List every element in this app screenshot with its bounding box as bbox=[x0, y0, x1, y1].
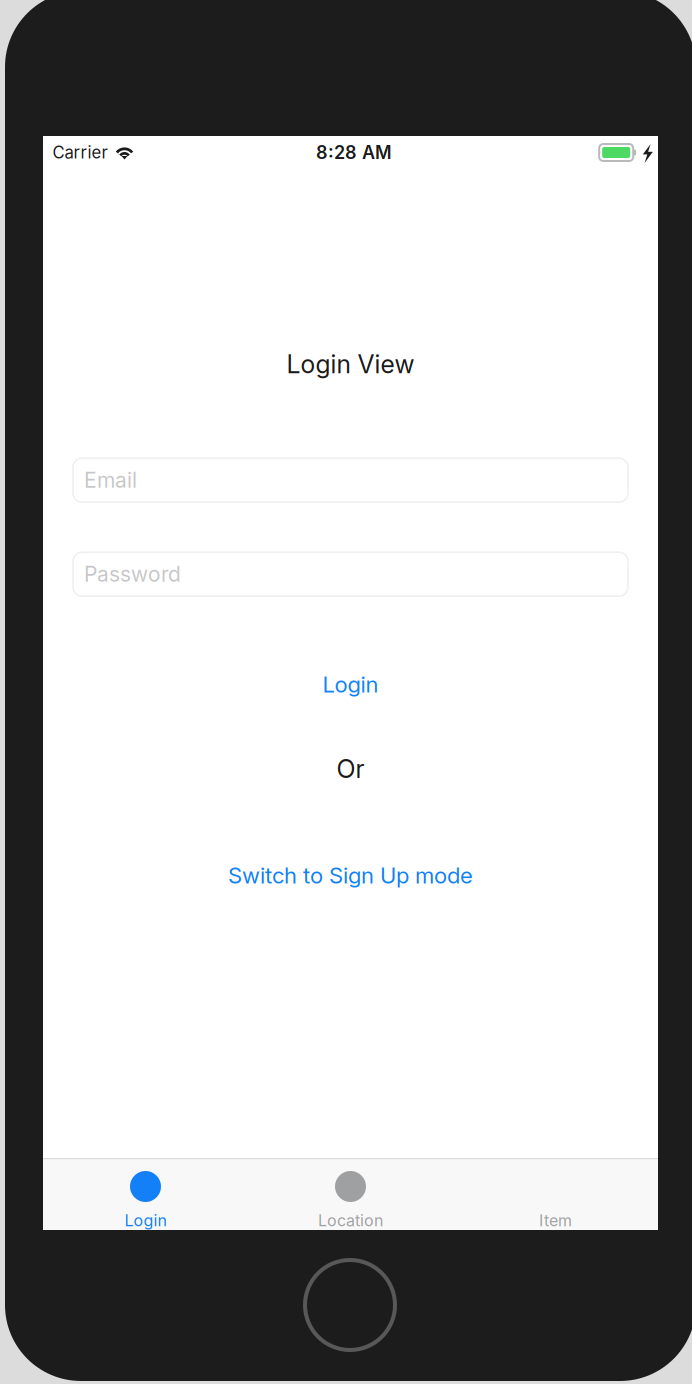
staticText: Switch to Sign Up mode bbox=[228, 862, 473, 889]
staticText: Item bbox=[539, 1211, 572, 1230]
button[interactable]: Login bbox=[322, 671, 378, 698]
button[interactable]: Item bbox=[453, 1158, 658, 1230]
button[interactable]: Email bbox=[73, 458, 628, 502]
staticText: Location bbox=[318, 1211, 383, 1230]
staticText: Carrier bbox=[52, 142, 107, 163]
button[interactable]: Location bbox=[248, 1158, 453, 1230]
staticText: Login View bbox=[286, 349, 414, 379]
button[interactable]: Login bbox=[43, 1158, 248, 1230]
staticText: Or bbox=[336, 754, 364, 784]
staticText: Login bbox=[124, 1211, 166, 1230]
button[interactable]: Password bbox=[73, 552, 628, 596]
button[interactable]: Switch to Sign Up mode bbox=[228, 862, 473, 889]
staticText: Login bbox=[322, 671, 378, 698]
staticText: Password bbox=[84, 561, 181, 587]
staticText: 8:28 AM bbox=[316, 142, 392, 163]
staticText: Email bbox=[84, 467, 137, 493]
